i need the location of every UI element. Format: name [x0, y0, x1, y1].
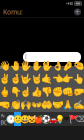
staticText: 🤏 [73, 60, 84, 71]
button[interactable]: 👉 [63, 72, 73, 85]
button[interactable]: 👆 [73, 72, 84, 85]
button[interactable]: 🤏 [73, 59, 84, 72]
button[interactable]: 🤘 [31, 72, 42, 85]
staticText: 🤝 [52, 99, 64, 110]
staticText: 🙌 [20, 99, 32, 110]
button[interactable]: 🤜 [0, 98, 10, 111]
staticText: 🖐 [20, 60, 32, 71]
staticText: 🤲 [41, 99, 53, 110]
staticText: ✌ [0, 73, 11, 84]
staticText: 🖖 [41, 60, 53, 71]
staticText: ❤ [63, 114, 70, 124]
button[interactable]: 👈 [52, 72, 63, 85]
staticText: 👐 [31, 99, 43, 110]
staticText: 🤟 [20, 73, 32, 84]
button[interactable]: 👊 [63, 85, 73, 98]
staticText: 🙂 [12, 114, 22, 123]
staticText: 👉 [62, 73, 74, 84]
staticText: 🚩 [68, 114, 78, 123]
staticText: 👋 [0, 60, 11, 71]
staticText: 🤙 [41, 73, 53, 84]
staticText: ⌫ [75, 114, 84, 124]
staticText: 👇 [10, 86, 22, 97]
button[interactable]: 🤙 [42, 72, 52, 85]
staticText: 🙏 [62, 99, 74, 110]
button[interactable]: Add contact [74, 8, 81, 15]
button[interactable]: 👋 [0, 59, 10, 72]
button[interactable]: 🤝 [52, 98, 63, 111]
staticText: 👏 [10, 99, 22, 110]
button[interactable]: ✋ [31, 59, 42, 72]
staticText: 🕐 [5, 114, 15, 123]
button[interactable]: 🤲 [42, 98, 52, 111]
staticText: 👍 [31, 86, 43, 97]
staticText: ✋ [31, 60, 43, 71]
staticText: Komu: [3, 8, 23, 16]
staticText: 👌 [52, 60, 64, 71]
button[interactable]: ✌ [0, 72, 10, 85]
staticText: 👈 [52, 73, 64, 84]
staticText: 😀 [19, 114, 29, 123]
staticText: 🍎 [33, 114, 43, 123]
staticText: 🤚 [10, 60, 22, 71]
button[interactable]: 👇 [10, 85, 21, 98]
button[interactable]: 👌 [52, 59, 63, 72]
button[interactable]: 👎 [42, 85, 52, 98]
staticText: ☝ [20, 86, 32, 97]
staticText: 👊 [62, 86, 74, 97]
button[interactable]: 👏 [10, 98, 21, 111]
staticText: 👎 [41, 86, 53, 97]
button[interactable]: ✍ [73, 98, 84, 111]
button[interactable]: 🤟 [21, 72, 31, 85]
button[interactable]: 🤞 [10, 72, 21, 85]
staticText: ✍ [73, 99, 84, 110]
button[interactable]: 🙌 [21, 98, 31, 111]
button[interactable]: 🖐 [21, 59, 31, 72]
button[interactable]: 🤚 [10, 59, 21, 72]
staticText: 🤞 [10, 73, 22, 84]
staticText: 🐱 [26, 114, 36, 123]
staticText: ABC [0, 112, 6, 126]
button[interactable]: 👐 [31, 98, 42, 111]
staticText: 🤌 [62, 60, 74, 71]
staticText: 👆 [73, 73, 84, 84]
staticText: ⚽ [40, 114, 50, 123]
button[interactable]: 🖕 [0, 85, 10, 98]
button[interactable]: ☝ [21, 85, 31, 98]
button[interactable]: 👍 [31, 85, 42, 98]
staticText: 🤛 [73, 86, 84, 97]
button[interactable]: 🤌 [63, 59, 73, 72]
button[interactable]: 🖖 [42, 59, 52, 72]
staticText: 🤘 [31, 73, 43, 84]
staticText: + [75, 7, 80, 17]
button[interactable]: 🙏 [63, 98, 73, 111]
staticText: 💡 [54, 114, 64, 123]
staticText: 🚗 [47, 114, 57, 123]
staticText: 🖕 [0, 86, 11, 97]
button[interactable]: ✊ [52, 85, 63, 98]
button[interactable]: 🤛 [73, 85, 84, 98]
staticText: ✊ [52, 86, 64, 97]
staticText: 🤜 [0, 99, 11, 110]
